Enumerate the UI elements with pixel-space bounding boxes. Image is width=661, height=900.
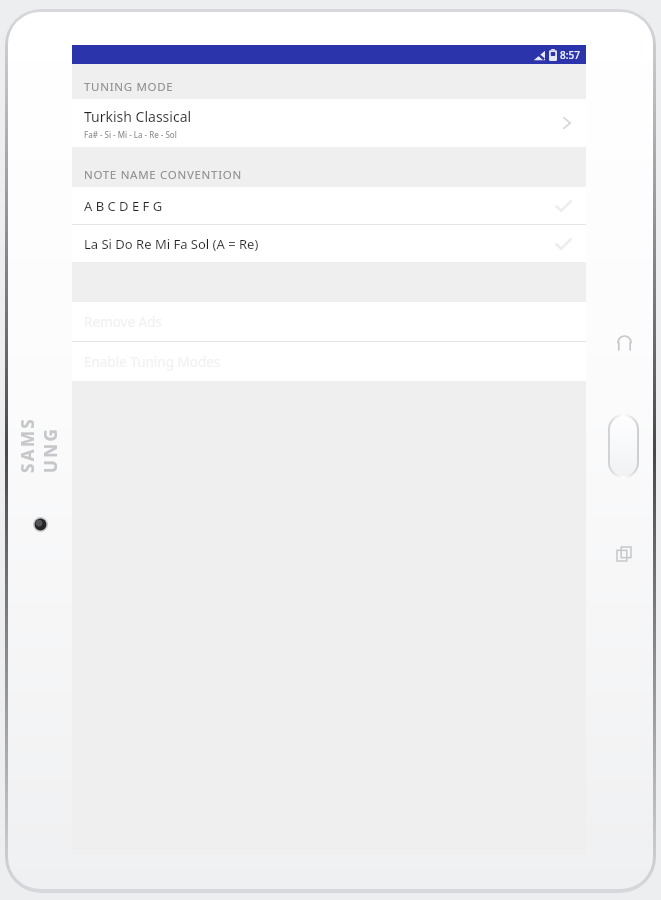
staticText: La Si Do Re Mi Fa Sol (A = Re): [84, 235, 555, 253]
staticText: SAMSUNG: [16, 415, 62, 473]
staticText: 8:57: [560, 48, 580, 62]
button[interactable]: Home: [608, 414, 639, 478]
staticText: Fa# - Si - Mi - La - Re - Sol: [84, 129, 177, 140]
staticText: NOTE NAME CONVENTION: [84, 167, 242, 183]
button[interactable]: La Si Do Re Mi Fa Sol (A = Re): [72, 225, 586, 262]
staticText: A B C D E F G: [84, 197, 555, 215]
button[interactable]: Back: [610, 329, 638, 357]
button[interactable]: Turkish Classical: [72, 99, 586, 147]
button[interactable]: A B C D E F G: [72, 187, 586, 224]
button[interactable]: Recent apps: [610, 540, 638, 568]
staticText: Remove Ads: [84, 313, 162, 331]
staticText: Turkish Classical: [84, 107, 192, 126]
staticText: TUNING MODE: [84, 79, 174, 95]
staticText: Enable Tuning Modes: [84, 353, 221, 371]
